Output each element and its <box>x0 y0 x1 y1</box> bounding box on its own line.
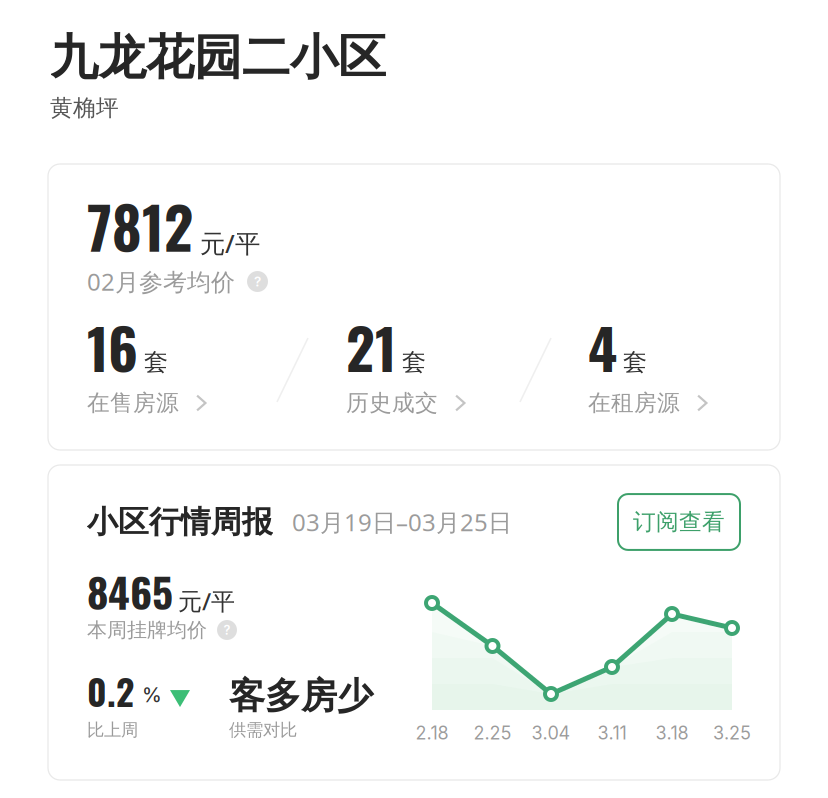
staticText: 在租房源 <box>588 389 680 417</box>
staticText: 本周挂牌均价 <box>87 618 207 642</box>
staticText: 在售房源 <box>87 389 179 417</box>
staticText: 03月19日–03月25日 <box>292 506 512 538</box>
staticText: 16 <box>87 305 138 388</box>
staticText: 0.2 <box>87 664 134 717</box>
staticText: 7812 <box>87 184 193 268</box>
staticText: 黄桷坪 <box>50 94 119 122</box>
staticText: 3.25 <box>713 722 751 744</box>
button[interactable]: 订阅查看 <box>618 494 740 550</box>
staticText: 3.18 <box>655 722 688 744</box>
button[interactable]: 16 <box>87 325 206 415</box>
staticText: 2.25 <box>473 722 511 744</box>
staticText: 元/平 <box>178 585 235 617</box>
staticText: 比上周 <box>87 719 138 741</box>
staticText: 供需对比 <box>229 719 297 741</box>
button[interactable]: 4 <box>588 325 707 415</box>
staticText: 套 <box>623 347 647 377</box>
staticText: 3.04 <box>531 722 570 744</box>
staticText: 九龙花园二小区 <box>50 28 386 87</box>
staticText: % <box>142 683 162 707</box>
staticText: 4 <box>588 305 617 388</box>
staticText: 2.18 <box>415 722 448 744</box>
staticText: 订阅查看 <box>633 508 725 536</box>
staticText: 套 <box>402 347 426 377</box>
staticText: 21 <box>346 305 396 388</box>
staticText: 客多房少 <box>229 674 373 718</box>
staticText: ? <box>254 273 261 290</box>
staticText: 3.11 <box>597 722 626 744</box>
button[interactable]: 21 <box>346 325 465 415</box>
staticText: 元/平 <box>200 226 260 260</box>
staticText: 02月参考均价 <box>87 266 235 297</box>
staticText: 套 <box>144 347 168 377</box>
staticText: ? <box>223 622 230 638</box>
staticText: 历史成交 <box>346 389 438 417</box>
staticText: 8465 <box>87 560 173 622</box>
staticText: 小区行情周报 <box>87 503 273 541</box>
